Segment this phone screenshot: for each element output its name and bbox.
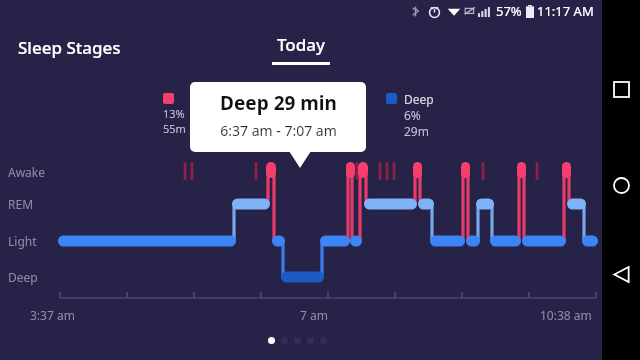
staticText: 6:37 am - 7:07 am: [220, 121, 337, 140]
staticText: 29m: [404, 123, 429, 139]
staticText: 10:38 am: [540, 307, 592, 323]
button[interactable]: [281, 337, 288, 344]
button[interactable]: Recents: [604, 72, 638, 106]
button[interactable]: Sleep Stages: [18, 36, 121, 59]
staticText: 13%: [163, 106, 185, 121]
staticText: 55m: [163, 121, 186, 136]
button[interactable]: [307, 337, 314, 344]
staticText: Awake: [8, 164, 46, 180]
staticText: 3:37 am: [30, 307, 75, 323]
staticText: Light: [8, 233, 37, 249]
button[interactable]: Back: [604, 257, 638, 291]
staticText: Deep: [404, 91, 434, 107]
button[interactable]: [294, 337, 301, 344]
staticText: Today: [277, 33, 325, 56]
staticText: 11:17 AM: [537, 2, 594, 20]
button[interactable]: Home: [604, 168, 638, 202]
staticText: 57%: [496, 2, 522, 20]
staticText: Deep: [8, 269, 38, 285]
staticText: 6%: [404, 107, 421, 123]
button[interactable]: [320, 337, 327, 344]
button[interactable]: Today: [272, 22, 330, 65]
button[interactable]: [268, 337, 275, 344]
staticText: Deep 29 min: [220, 90, 337, 116]
staticText: REM: [8, 196, 34, 212]
staticText: 7 am: [300, 307, 328, 323]
staticText: Sleep Stages: [18, 36, 121, 59]
